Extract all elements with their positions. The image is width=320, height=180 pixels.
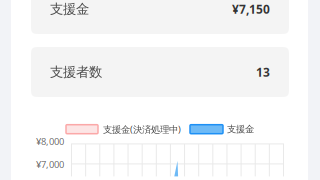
staticText: 13: [256, 64, 270, 80]
staticText: 支援金: [227, 123, 254, 135]
staticText: 支援金: [50, 1, 89, 17]
button[interactable]: 支援者数: [31, 47, 289, 97]
staticText: ¥7,000: [36, 158, 64, 171]
staticText: ¥7,150: [232, 1, 270, 17]
staticText: 支援者数: [50, 64, 102, 80]
staticText: ¥8,000: [36, 135, 64, 148]
staticText: 支援金(決済処理中): [103, 123, 181, 135]
button[interactable]: 支援金: [31, 0, 289, 34]
